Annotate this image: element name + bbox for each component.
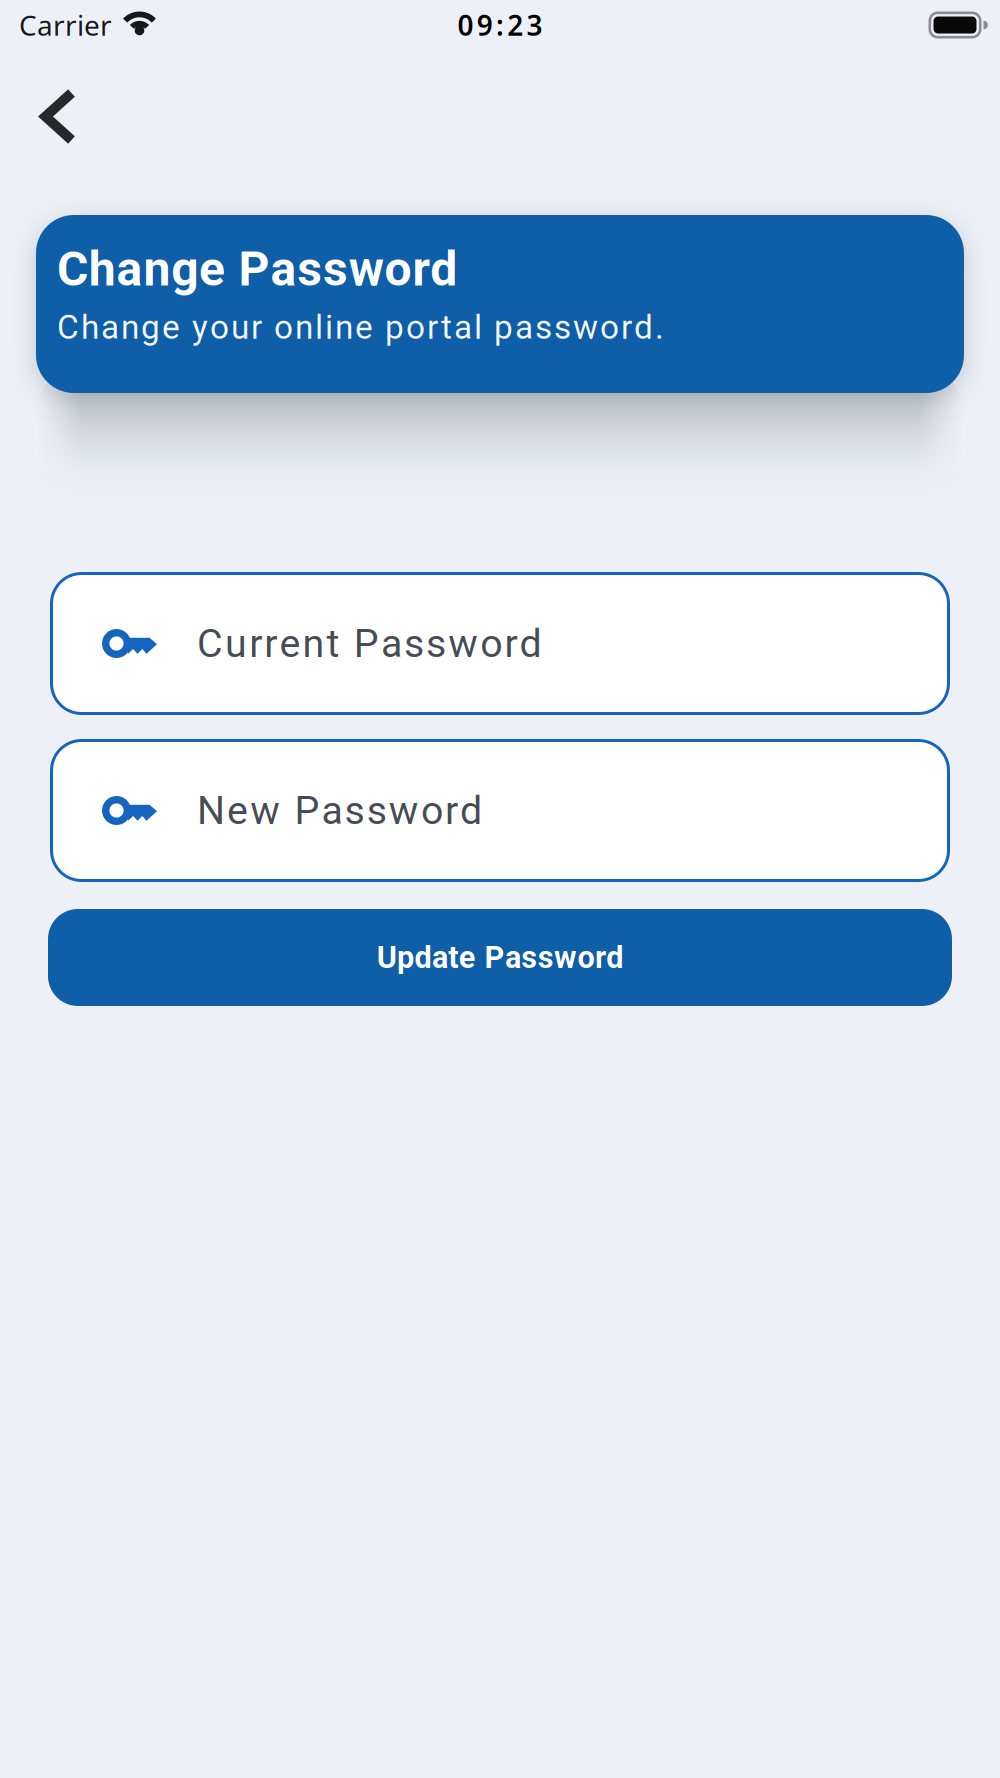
- staticText: Change your online portal password.: [57, 308, 664, 347]
- button[interactable]: Update Password: [0, 909, 1000, 1006]
- button[interactable]: Current Password: [0, 572, 1000, 715]
- staticText: Carrier: [19, 6, 112, 44]
- staticText: 9: [477, 6, 493, 44]
- staticText: 3: [526, 6, 542, 44]
- staticText: Update Password: [377, 939, 623, 975]
- button[interactable]: Back: [0, 50, 76, 145]
- button[interactable]: New Password: [0, 739, 1000, 882]
- staticText: :: [496, 6, 504, 44]
- staticText: Current Password: [197, 620, 541, 667]
- staticText: Change Password: [57, 241, 457, 297]
- staticText: 0: [458, 6, 474, 44]
- staticText: New Password: [197, 787, 482, 834]
- staticText: 2: [507, 6, 523, 44]
